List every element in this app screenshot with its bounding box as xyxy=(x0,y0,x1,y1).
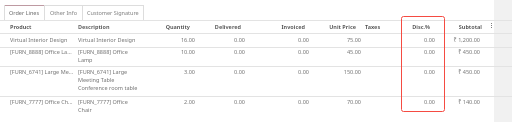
staticText: ₹ 450.00 xyxy=(416,68,480,75)
button[interactable] xyxy=(0,47,512,67)
staticText: Product xyxy=(10,23,32,30)
staticText: 2.00 xyxy=(131,98,195,105)
staticText: Meeting Table xyxy=(78,76,166,83)
staticText: Delivered xyxy=(177,23,241,30)
staticText: ₹ 140.00 xyxy=(416,98,480,105)
staticText: 75.00 xyxy=(297,36,361,43)
staticText: Other Info xyxy=(50,9,77,16)
staticText: Customer Signature xyxy=(87,9,139,16)
button[interactable] xyxy=(0,33,512,47)
staticText: Quantity xyxy=(126,23,190,30)
staticText: 70.00 xyxy=(297,98,361,105)
staticText: 0.00 xyxy=(371,98,435,105)
staticText: Description xyxy=(78,23,110,30)
staticText: Subtotal xyxy=(418,23,482,30)
staticText: 150.00 xyxy=(297,68,361,75)
staticText: [FURN_8888] Office La... xyxy=(10,48,74,55)
staticText: 0.00 xyxy=(245,98,309,105)
staticText: Virtual Interior Design xyxy=(78,36,166,43)
staticText: 0.00 xyxy=(181,68,245,75)
staticText: [FURN_8888] Office xyxy=(78,48,166,55)
staticText: 10.00 xyxy=(131,48,195,55)
button[interactable]: Other Info xyxy=(44,5,82,20)
staticText: 0.00 xyxy=(181,98,245,105)
button[interactable]: Optional columns xyxy=(487,20,495,31)
staticText: 0.00 xyxy=(245,48,309,55)
button[interactable] xyxy=(0,66,512,95)
staticText: 3.00 xyxy=(131,68,195,75)
staticText: Conference room table xyxy=(78,84,166,91)
staticText: 0.00 xyxy=(371,48,435,55)
staticText: 0.00 xyxy=(181,48,245,55)
staticText: 45.00 xyxy=(297,48,361,55)
staticText: 0.00 xyxy=(181,36,245,43)
staticText: [FURN_6741] Large Me... xyxy=(10,68,74,75)
staticText: 0.00 xyxy=(371,68,435,75)
staticText: Invoiced xyxy=(241,23,305,30)
staticText: [FURN_7777] Office xyxy=(78,98,166,105)
staticText: 0.00 xyxy=(371,36,435,43)
staticText: [FURN_7777] Office Ch... xyxy=(10,98,74,105)
button[interactable]: Order Lines xyxy=(4,5,44,20)
staticText: 16.00 xyxy=(131,36,195,43)
staticText: Disc.% xyxy=(366,23,430,30)
staticText: 0.00 xyxy=(245,68,309,75)
staticText: Lamp xyxy=(78,56,166,63)
staticText: ₹ 1,200.00 xyxy=(416,36,480,43)
button[interactable] xyxy=(0,96,512,116)
staticText: Order Lines xyxy=(9,9,40,16)
staticText: Chair xyxy=(78,106,166,113)
staticText: Unit Price xyxy=(292,23,356,30)
staticText: [FURN_6741] Large xyxy=(78,68,166,75)
staticText: Taxes xyxy=(365,23,381,30)
button[interactable]: Customer Signature xyxy=(82,5,144,20)
staticText: ₹ 450.00 xyxy=(416,48,480,55)
staticText: 0.00 xyxy=(245,36,309,43)
staticText: Virtual Interior Design xyxy=(10,36,74,43)
